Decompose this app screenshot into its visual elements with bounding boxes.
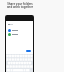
button[interactable]: Keyboard [6,54,33,72]
button[interactable]: Send [26,50,31,52]
button[interactable] [6,32,33,36]
button[interactable] [6,28,33,32]
staticText: Share your folders and work together [6,2,34,9]
